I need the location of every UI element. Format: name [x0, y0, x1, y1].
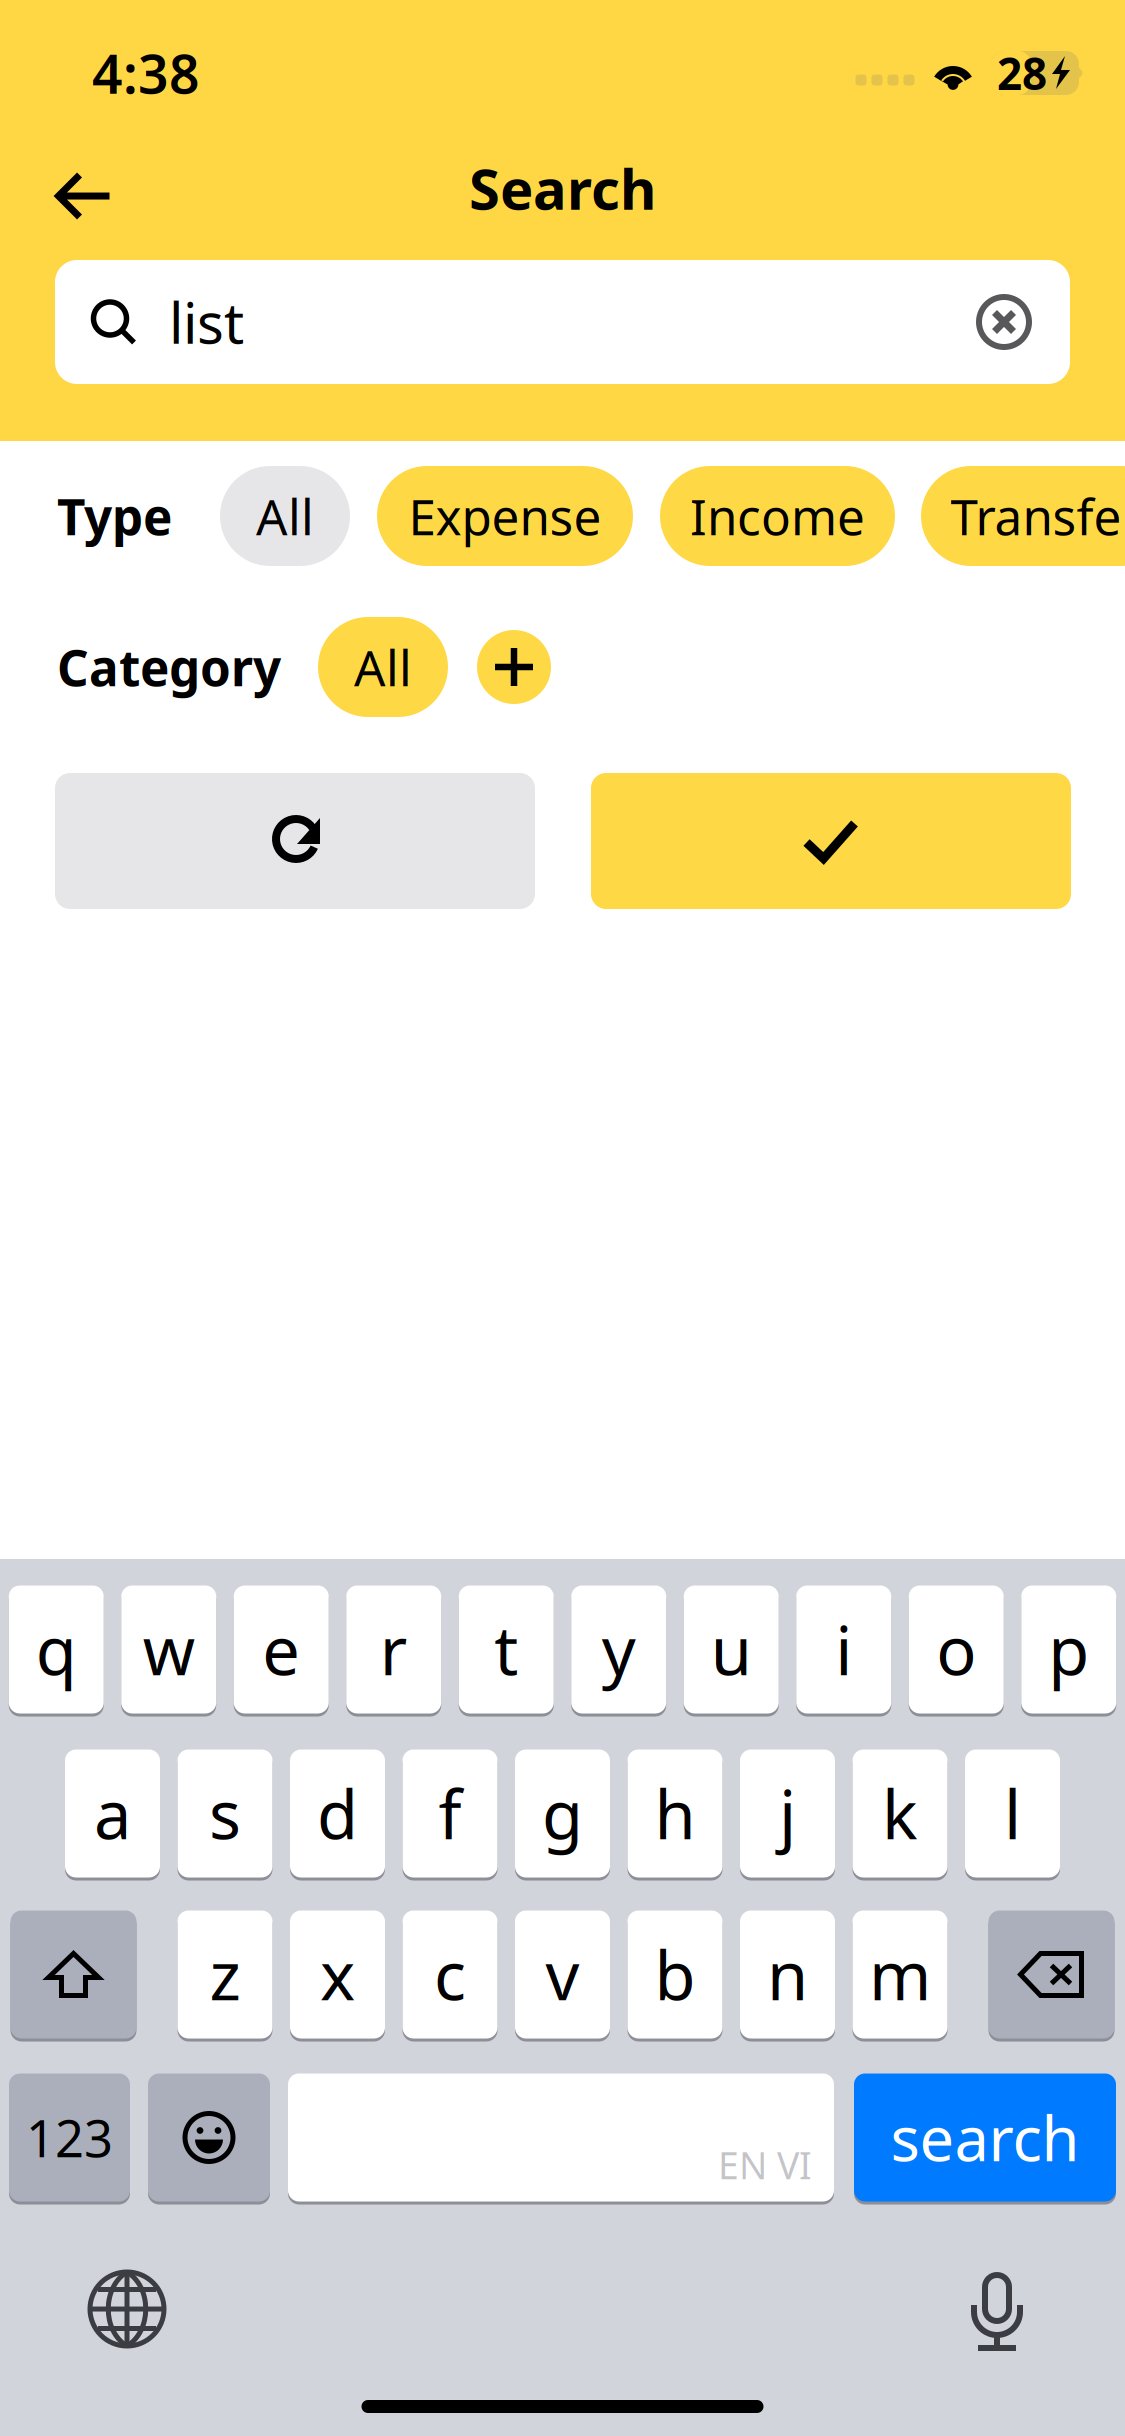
staticText: o — [936, 1605, 976, 1694]
button[interactable]: l — [965, 1748, 1060, 1879]
button[interactable]: f — [402, 1748, 497, 1879]
staticText: Income — [690, 483, 865, 549]
button[interactable]: i — [796, 1584, 891, 1715]
button[interactable]: z — [177, 1909, 272, 2040]
staticText: t — [494, 1605, 518, 1694]
button[interactable]: t — [459, 1584, 554, 1715]
staticText: Search — [469, 151, 656, 225]
staticText: v — [545, 1930, 579, 2019]
button[interactable]: search — [854, 2072, 1116, 2203]
button[interactable]: k — [852, 1748, 947, 1879]
staticText: e — [262, 1605, 300, 1694]
staticText: p — [1048, 1605, 1089, 1694]
button[interactable]: Dictation — [968, 2266, 1026, 2352]
button[interactable]: b — [627, 1909, 722, 2040]
staticText: c — [434, 1930, 466, 2019]
staticText: f — [438, 1769, 461, 1858]
button[interactable]: d — [290, 1748, 385, 1879]
button[interactable]: All — [318, 617, 448, 717]
button[interactable]: Delete — [988, 1909, 1114, 2040]
button[interactable]: r — [346, 1584, 441, 1715]
button[interactable]: q — [9, 1584, 104, 1715]
staticText: k — [882, 1769, 918, 1858]
staticText: All — [256, 483, 314, 549]
staticText: Type — [57, 483, 172, 549]
staticText: w — [143, 1605, 195, 1694]
staticText: d — [317, 1769, 358, 1858]
button[interactable]: Reset filters — [55, 773, 535, 909]
button[interactable]: All — [220, 466, 350, 566]
staticText: m — [869, 1930, 931, 2019]
button[interactable]: o — [909, 1584, 1004, 1715]
button[interactable]: x — [290, 1909, 385, 2040]
button[interactable]: j — [740, 1748, 835, 1879]
staticText: l — [1004, 1769, 1021, 1858]
staticText: Expense — [408, 483, 601, 549]
staticText: y — [602, 1605, 636, 1694]
staticText: a — [94, 1769, 131, 1858]
staticText: x — [320, 1930, 355, 2019]
button[interactable]: Income — [660, 466, 895, 566]
button[interactable]: e — [234, 1584, 329, 1715]
staticText: q — [36, 1605, 77, 1694]
staticText: 123 — [26, 2104, 113, 2171]
staticText: r — [380, 1605, 408, 1694]
staticText: u — [711, 1605, 752, 1694]
button[interactable]: n — [740, 1909, 835, 2040]
button[interactable]: h — [627, 1748, 722, 1879]
staticText: All — [354, 634, 412, 700]
staticText: search — [890, 2097, 1079, 2178]
staticText: n — [767, 1930, 808, 2019]
staticText: g — [542, 1769, 583, 1858]
staticText: z — [209, 1930, 240, 2019]
button[interactable]: a — [65, 1748, 160, 1879]
staticText: Transfer — [950, 483, 1125, 549]
staticText: list — [169, 285, 244, 359]
staticText: Category — [57, 634, 281, 700]
button[interactable]: p — [1021, 1584, 1116, 1715]
staticText: 4:38 — [92, 38, 200, 108]
staticText: j — [779, 1769, 796, 1858]
button[interactable]: Transfer — [921, 466, 1125, 566]
button[interactable]: g — [515, 1748, 610, 1879]
staticText: EN VI — [718, 2140, 812, 2189]
button[interactable]: y — [571, 1584, 666, 1715]
button[interactable]: Back — [32, 136, 136, 240]
button[interactable]: m — [852, 1909, 947, 2040]
button[interactable]: Apply filters — [591, 773, 1071, 909]
button[interactable]: w — [121, 1584, 216, 1715]
button[interactable]: 123 — [9, 2072, 130, 2203]
button[interactable]: Expense — [377, 466, 633, 566]
button[interactable]: c — [402, 1909, 497, 2040]
button[interactable]: Switch keyboard — [87, 2269, 167, 2349]
button[interactable]: Add category — [477, 630, 551, 704]
button[interactable]: Clear text — [976, 294, 1032, 350]
button[interactable]: Shift — [10, 1909, 136, 2040]
button[interactable]: u — [684, 1584, 779, 1715]
button[interactable]: Emoji — [148, 2072, 270, 2203]
button[interactable]: s — [177, 1748, 272, 1879]
staticText: i — [835, 1605, 852, 1694]
staticText: h — [654, 1769, 695, 1858]
staticText: b — [654, 1930, 695, 2019]
staticText: s — [209, 1769, 241, 1858]
button[interactable]: space — [288, 2072, 834, 2203]
button[interactable]: v — [515, 1909, 610, 2040]
staticText: 28 — [997, 44, 1047, 102]
